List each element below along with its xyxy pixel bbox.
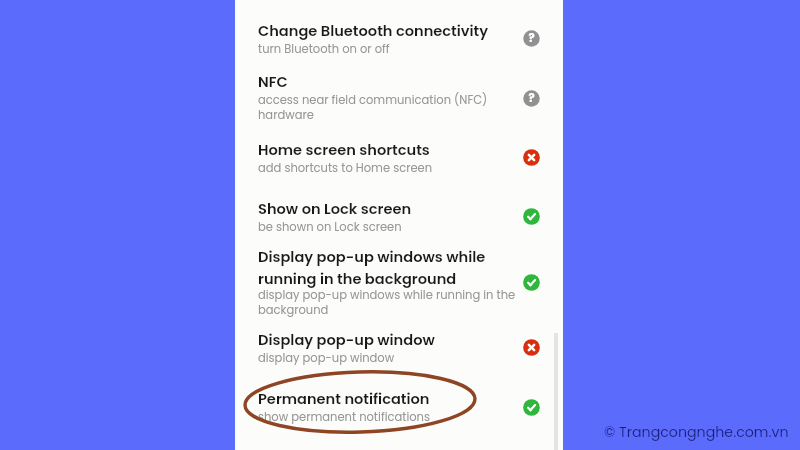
staticText: add shortcuts to Home screen <box>258 160 433 176</box>
button[interactable] <box>235 240 563 322</box>
button[interactable] <box>235 378 563 440</box>
button[interactable]: Allowed <box>521 272 541 292</box>
staticText: display pop-up windows while running in … <box>258 287 528 318</box>
staticText: NFC <box>258 72 288 92</box>
staticText: Permanent notification <box>258 389 430 409</box>
staticText: access near field communication (NFC) ha… <box>258 92 528 123</box>
button[interactable] <box>235 8 563 62</box>
button[interactable]: Help <box>521 28 541 48</box>
staticText: ? <box>528 30 535 46</box>
staticText: turn Bluetooth on or off <box>258 41 390 57</box>
staticText: show permanent notifications <box>258 409 430 425</box>
staticText: be shown on Lock screen <box>258 219 402 235</box>
staticText: Change Bluetooth connectivity <box>258 21 489 41</box>
button[interactable]: Help <box>521 88 541 108</box>
button[interactable] <box>235 130 563 188</box>
staticText: © Trangcongnghe.com.vn <box>604 422 789 442</box>
button[interactable]: Not allowed <box>521 147 541 167</box>
staticText: display pop-up window <box>258 350 395 366</box>
button[interactable]: Allowed <box>521 206 541 226</box>
staticText: Show on Lock screen <box>258 199 412 219</box>
button[interactable]: Not allowed <box>521 337 541 357</box>
staticText: Home screen shortcuts <box>258 140 430 160</box>
staticText: Display pop-up window <box>258 330 435 350</box>
staticText: Display pop-up windows while running in … <box>258 247 528 289</box>
button[interactable] <box>235 188 563 240</box>
staticText: ? <box>528 90 535 106</box>
button[interactable] <box>235 62 563 130</box>
button[interactable]: Allowed <box>521 397 541 417</box>
button[interactable] <box>235 322 563 378</box>
